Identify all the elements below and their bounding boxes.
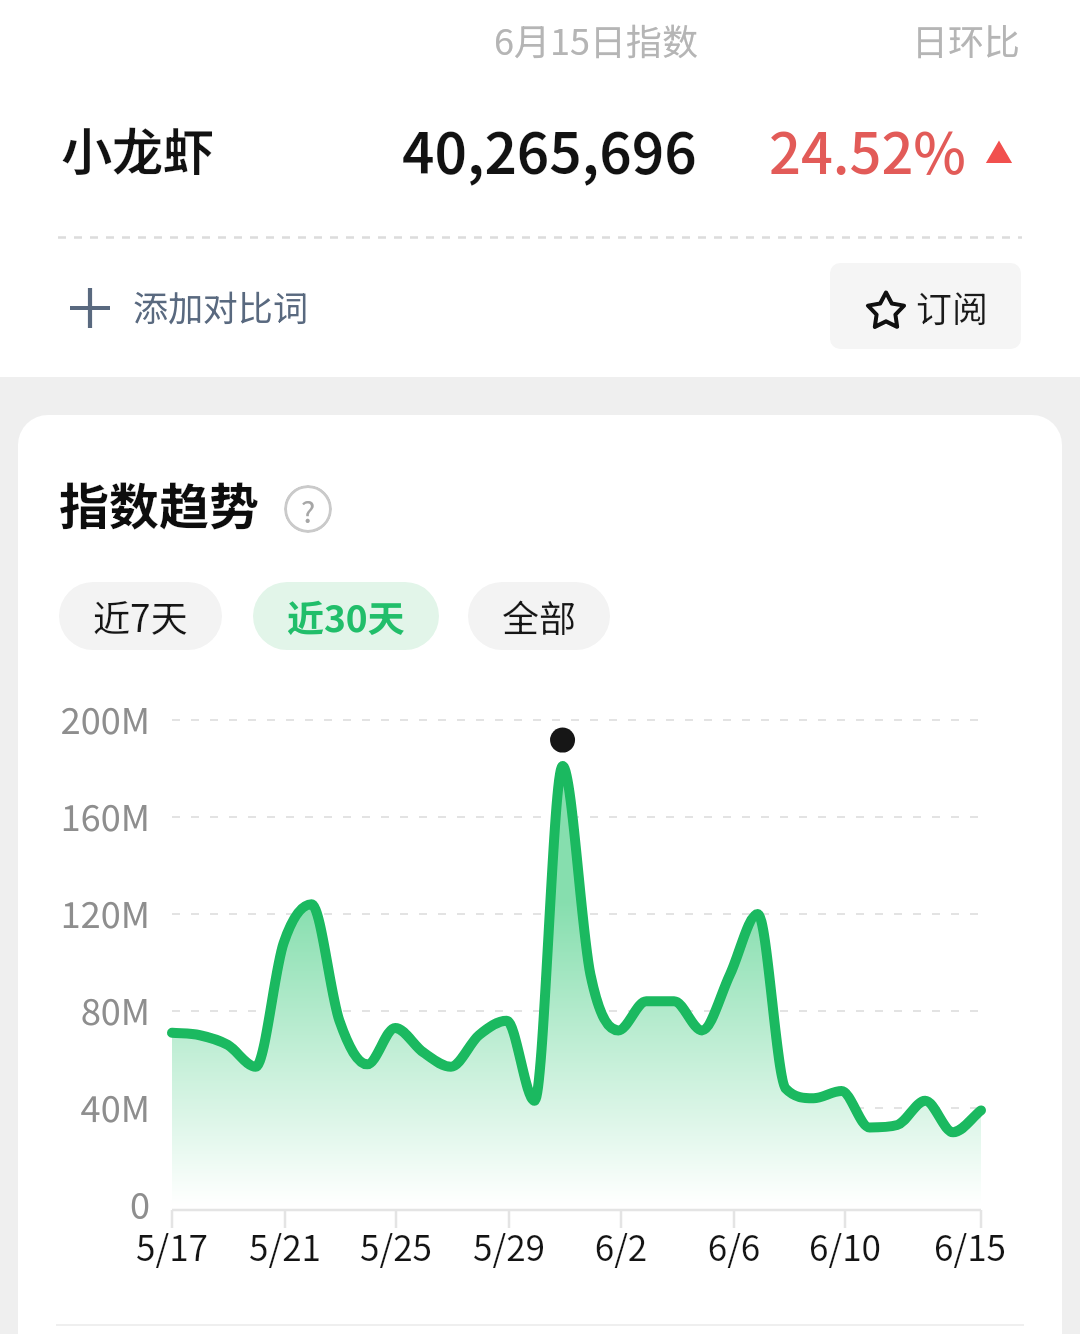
button[interactable]: 订阅 [830, 263, 1021, 349]
staticText: 近7天 [93, 589, 188, 643]
staticText: 6/2 [541, 1220, 701, 1271]
staticText: 小龙虾 [61, 112, 215, 186]
staticText: 订阅 [916, 280, 989, 332]
staticText: 6月15日指数 [494, 13, 698, 65]
staticText: 6/10 [765, 1220, 925, 1271]
staticText: 近30天 [287, 589, 405, 643]
button[interactable]: 帮助 [284, 485, 332, 533]
button[interactable]: 添加对比词 [47, 264, 331, 346]
staticText: 120M [18, 886, 150, 938]
staticText: 6/6 [654, 1220, 814, 1271]
staticText: 24.52% [769, 109, 966, 190]
staticText: 5/17 [92, 1220, 252, 1271]
staticText: 6/15 [890, 1220, 1050, 1271]
staticText: 160M [18, 789, 150, 841]
staticText: 40,265,696 [402, 109, 697, 190]
staticText: 5/29 [429, 1220, 589, 1271]
staticText: ? [301, 488, 316, 531]
staticText: 0 [18, 1177, 150, 1229]
staticText: 全部 [502, 589, 576, 643]
button[interactable]: 近30天 [253, 582, 439, 650]
staticText: 40M [18, 1080, 150, 1132]
staticText: 5/21 [205, 1220, 365, 1271]
button[interactable]: 近7天 [59, 582, 222, 650]
staticText: 添加对比词 [133, 280, 309, 331]
staticText: 日环比 [912, 13, 1021, 65]
staticText: 200M [18, 692, 150, 744]
staticText: 80M [18, 983, 150, 1035]
staticText: 指数趋势 [59, 467, 259, 539]
staticText: 5/25 [316, 1220, 476, 1271]
button[interactable]: 全部 [468, 582, 610, 650]
